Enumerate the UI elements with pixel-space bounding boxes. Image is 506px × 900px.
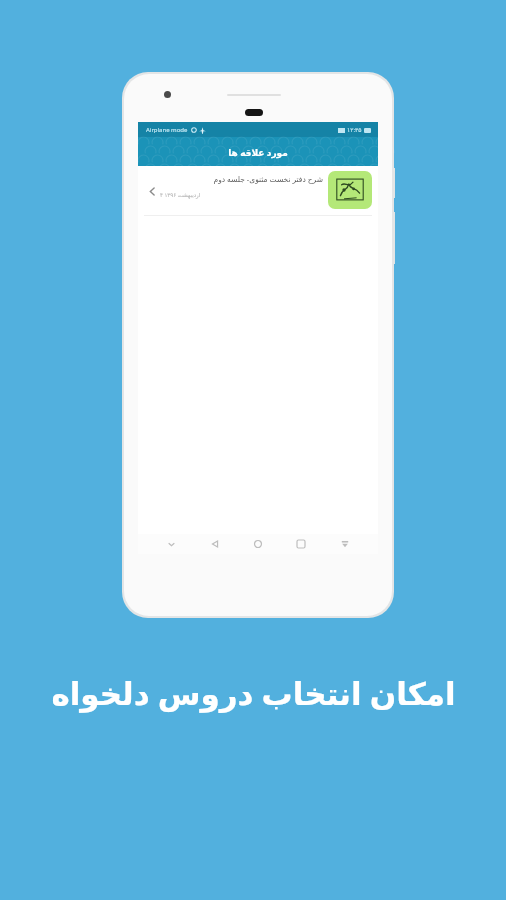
button[interactable]: Back <box>205 534 225 554</box>
staticText: Airplane mode <box>146 126 188 134</box>
staticText: امکان انتخاب دروس دلخواه <box>51 672 456 714</box>
button[interactable]: Hide <box>161 534 181 554</box>
button[interactable]: Open <box>138 166 378 216</box>
staticText: شرح دفتر نخست مثنوی- جلسه دوم <box>213 174 323 184</box>
button[interactable]: Recents <box>291 534 311 554</box>
button[interactable]: Switch keyboard <box>335 534 355 554</box>
staticText: ۱۲:۳۵ <box>347 126 362 134</box>
staticText: ۴ اردیبهشت ۱۳۹۶ <box>160 191 201 198</box>
staticText: مورد علاقه ها <box>228 146 288 158</box>
button[interactable]: Home <box>248 534 268 554</box>
other: Open <box>144 171 160 211</box>
other: Lesson thumbnail <box>328 171 372 209</box>
